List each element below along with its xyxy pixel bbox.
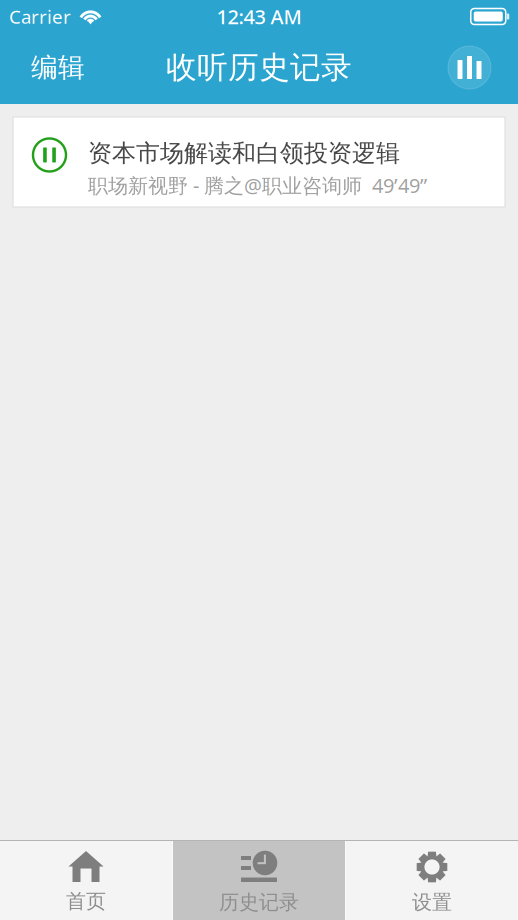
button[interactable]: 历史记录 bbox=[173, 841, 345, 920]
staticText: 职场新视野 - 腾之@职业咨询师 49’49” bbox=[88, 172, 427, 199]
staticText: Carrier bbox=[9, 4, 71, 29]
staticText: 编辑 bbox=[31, 51, 85, 84]
staticText: 资本市场解读和白领投资逻辑 bbox=[88, 138, 400, 168]
staticText: 收听历史记录 bbox=[166, 49, 352, 86]
staticText: 设置 bbox=[412, 890, 452, 915]
button[interactable]: Now Playing bbox=[448, 35, 518, 99]
staticText: 历史记录 bbox=[219, 890, 299, 915]
staticText: 12:43 AM bbox=[216, 3, 301, 30]
button[interactable]: 设置 bbox=[346, 841, 518, 920]
button[interactable]: 资本市场解读和白领投资逻辑 bbox=[13, 117, 505, 207]
button[interactable]: 编辑 bbox=[0, 35, 105, 99]
button[interactable]: 首页 bbox=[0, 841, 172, 920]
staticText: 首页 bbox=[66, 889, 106, 914]
